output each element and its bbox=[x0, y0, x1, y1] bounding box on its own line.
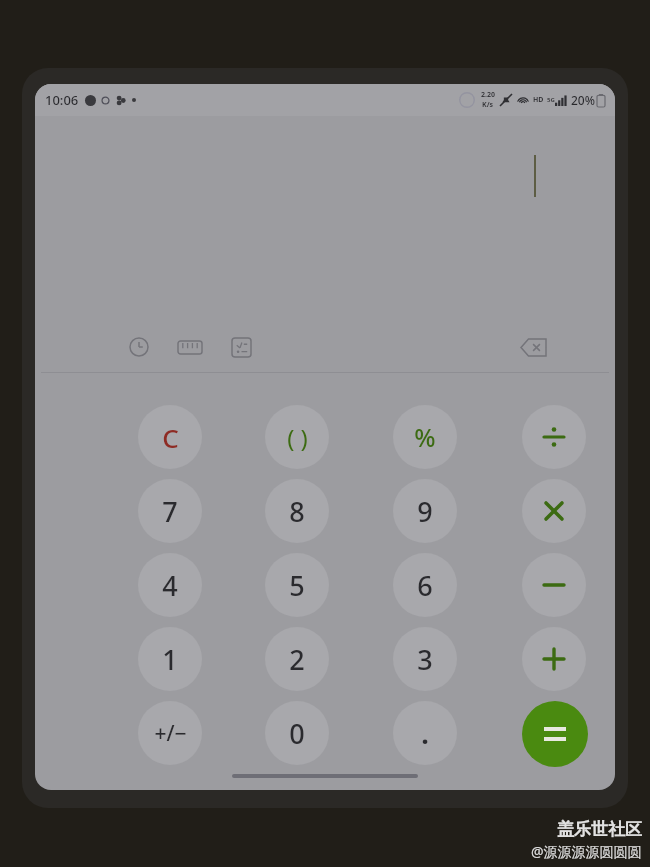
button[interactable]: +/− bbox=[138, 701, 202, 765]
button[interactable]: 5 bbox=[265, 553, 329, 617]
button[interactable]: ( ) bbox=[265, 405, 329, 469]
staticText: 7 bbox=[162, 493, 178, 530]
staticText: ( ) bbox=[287, 421, 308, 454]
staticText: 5 bbox=[289, 567, 305, 604]
staticText: 1 bbox=[162, 641, 178, 678]
staticText: 10:06 bbox=[45, 91, 79, 109]
staticText: 3 bbox=[417, 641, 433, 678]
staticText: C bbox=[162, 420, 179, 455]
button[interactable]: Minus bbox=[522, 553, 586, 617]
staticText: +/− bbox=[154, 719, 187, 748]
staticText: 8 bbox=[289, 493, 305, 530]
button[interactable]: 3 bbox=[393, 627, 457, 691]
button[interactable]: 0 bbox=[265, 701, 329, 765]
staticText: 9 bbox=[417, 493, 433, 530]
button[interactable]: 1 bbox=[138, 627, 202, 691]
staticText: . bbox=[421, 715, 429, 752]
button[interactable]: C bbox=[138, 405, 202, 469]
staticText: 20% bbox=[571, 92, 595, 108]
button[interactable]: 6 bbox=[393, 553, 457, 617]
staticText: @源源源源圆圆圆 bbox=[531, 842, 642, 861]
button[interactable]: 9 bbox=[393, 479, 457, 543]
staticText: 6 bbox=[417, 567, 433, 604]
button[interactable]: 4 bbox=[138, 553, 202, 617]
staticText: 5G bbox=[547, 96, 555, 104]
staticText: 0 bbox=[289, 715, 305, 752]
button[interactable]: Divide bbox=[522, 405, 586, 469]
button[interactable]: Equals bbox=[522, 701, 588, 767]
button[interactable]: Formulas bbox=[223, 329, 259, 365]
button[interactable]: History bbox=[121, 329, 157, 365]
button[interactable]: % bbox=[393, 405, 457, 469]
staticText: 2.20 bbox=[481, 90, 495, 100]
staticText: HD bbox=[533, 95, 544, 105]
button[interactable]: 7 bbox=[138, 479, 202, 543]
staticText: 2 bbox=[289, 641, 305, 678]
staticText: K/s bbox=[482, 100, 494, 110]
staticText: 盖乐世社区 bbox=[557, 819, 642, 840]
button[interactable]: Plus bbox=[522, 627, 586, 691]
button[interactable]: 2 bbox=[265, 627, 329, 691]
staticText: 4 bbox=[162, 567, 178, 604]
staticText: % bbox=[414, 420, 436, 454]
button[interactable]: . bbox=[393, 701, 457, 765]
button[interactable]: Unit converter bbox=[172, 329, 208, 365]
button[interactable]: Backspace bbox=[513, 327, 553, 367]
button[interactable]: Multiply bbox=[522, 479, 586, 543]
button[interactable]: 8 bbox=[265, 479, 329, 543]
